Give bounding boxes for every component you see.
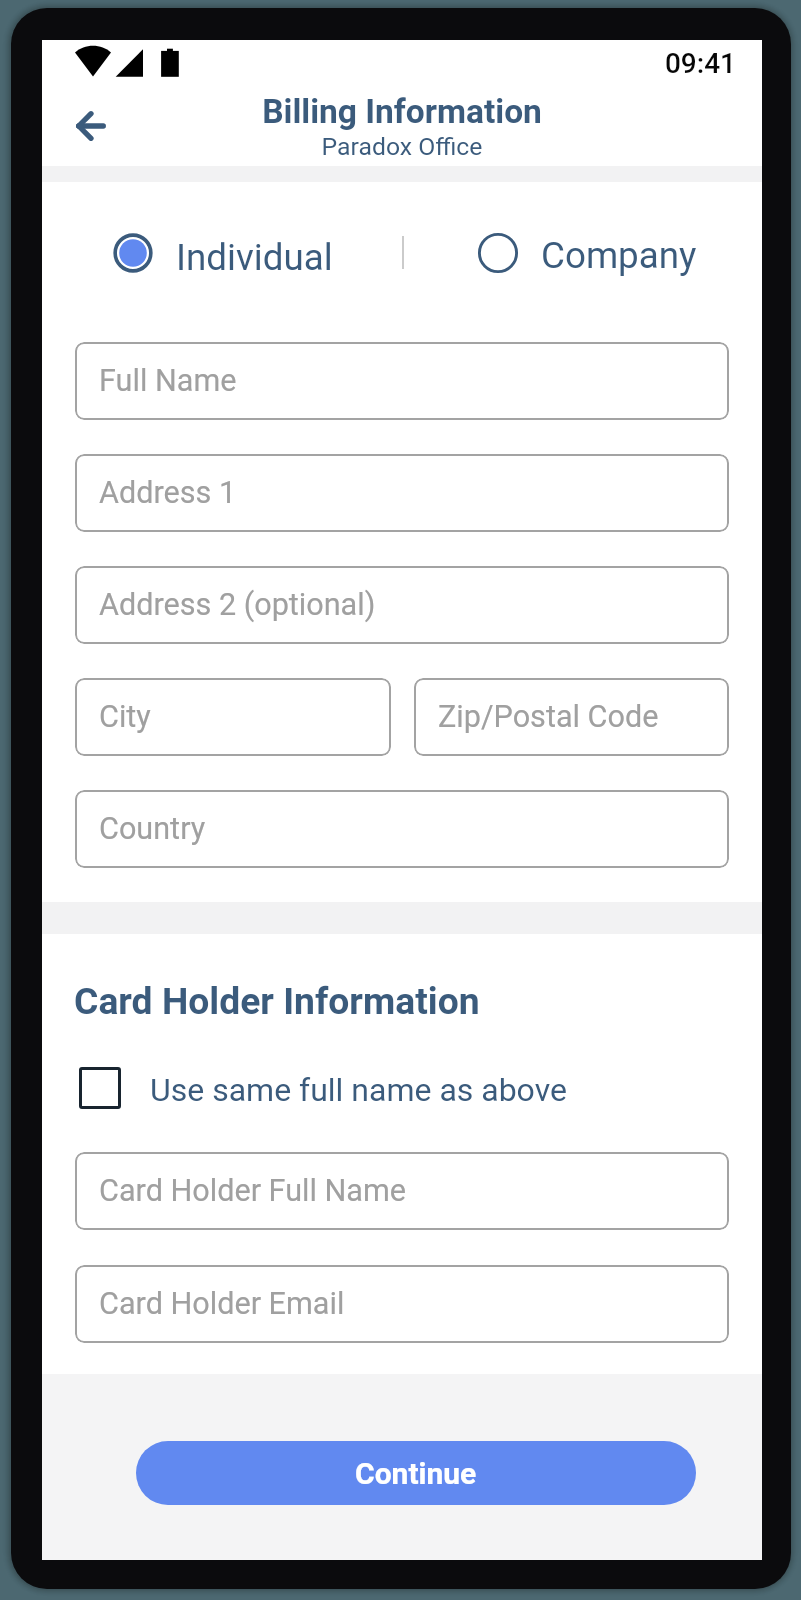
button[interactable]: Address 1 xyxy=(75,454,729,532)
staticText: Billing Information xyxy=(42,92,762,131)
button[interactable]: Back xyxy=(63,98,119,154)
staticText: Country xyxy=(99,811,206,847)
button[interactable]: Country xyxy=(75,790,729,868)
staticText: Card Holder Full Name xyxy=(99,1173,407,1209)
staticText: 09:41 xyxy=(566,47,736,80)
button[interactable]: Individual xyxy=(113,231,333,275)
button[interactable]: Card Holder Email xyxy=(75,1265,729,1343)
staticText: Card Holder Information xyxy=(74,979,480,1023)
staticText: City xyxy=(99,699,151,735)
staticText: Full Name xyxy=(99,363,237,399)
button[interactable]: City xyxy=(75,678,391,756)
staticText: Continue xyxy=(355,1456,477,1491)
button[interactable]: Company xyxy=(478,231,697,275)
staticText: Paradox Office xyxy=(42,132,762,161)
staticText: Individual xyxy=(176,236,333,279)
button[interactable]: Card Holder Full Name xyxy=(75,1152,729,1230)
staticText: Card Holder Email xyxy=(99,1286,345,1322)
button[interactable]: Continue xyxy=(136,1441,696,1505)
staticText: Use same full name as above xyxy=(150,1071,567,1109)
button[interactable]: Full Name xyxy=(75,342,729,420)
button[interactable]: Zip/Postal Code xyxy=(414,678,729,756)
staticText: Address 1 xyxy=(99,475,237,511)
staticText: Company xyxy=(541,234,697,277)
staticText: Zip/Postal Code xyxy=(438,699,659,735)
button[interactable]: Use same full name as above xyxy=(79,1063,567,1113)
button[interactable]: Address 2 (optional) xyxy=(75,566,729,644)
staticText: Address 2 (optional) xyxy=(99,587,376,623)
